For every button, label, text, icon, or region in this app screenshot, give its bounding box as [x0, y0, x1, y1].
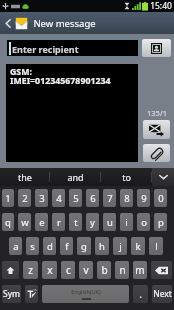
staticText: j — [119, 240, 122, 253]
button[interactable]: j — [113, 237, 127, 255]
staticText: Next — [153, 288, 172, 300]
button[interactable]: i — [120, 213, 133, 231]
staticText: h — [99, 240, 105, 253]
button[interactable]: q — [2, 213, 14, 231]
staticText: c — [66, 263, 71, 277]
button[interactable]: 8 — [120, 189, 133, 207]
button[interactable]: x — [42, 261, 57, 279]
button[interactable]: GSM: IMEI=012345678901234 — [6, 64, 138, 162]
staticText: a — [13, 240, 19, 253]
button[interactable]: v — [79, 261, 93, 279]
staticText: New message — [33, 17, 96, 30]
staticText: y — [90, 216, 95, 229]
button[interactable]: g — [77, 237, 91, 255]
button[interactable]: Change language — [25, 285, 38, 303]
staticText: English(UK) — [71, 288, 101, 295]
staticText: 7 — [107, 192, 113, 205]
staticText: 135/1 — [147, 108, 167, 118]
staticText: v — [83, 263, 89, 277]
button[interactable]: Attach — [143, 144, 170, 162]
staticText: 0 — [158, 192, 164, 205]
button[interactable]: b — [97, 261, 111, 279]
button[interactable]: Add subject — [143, 120, 170, 139]
button[interactable]: More suggestions — [152, 168, 174, 186]
button[interactable]: 3 — [35, 189, 48, 207]
staticText: s — [30, 240, 35, 253]
button[interactable]: 0 — [154, 189, 167, 207]
staticText: g — [81, 240, 87, 253]
staticText: r — [57, 216, 61, 229]
button[interactable]: l — [149, 237, 163, 255]
staticText: 8 — [124, 192, 130, 205]
button[interactable]: u — [103, 213, 116, 231]
button[interactable]: t — [69, 213, 82, 231]
staticText: o — [141, 216, 147, 229]
button[interactable]: s — [26, 237, 39, 255]
staticText: 1 — [5, 192, 11, 205]
staticText: t — [74, 216, 78, 229]
button[interactable]: k — [131, 237, 145, 255]
staticText: d — [47, 240, 53, 253]
button[interactable]: c — [61, 261, 75, 279]
button[interactable]: h — [95, 237, 109, 255]
button[interactable]: 7 — [103, 189, 116, 207]
staticText: f — [65, 240, 69, 253]
button[interactable]: Sym — [2, 285, 21, 303]
button[interactable]: to — [101, 168, 151, 186]
button[interactable]: 9 — [137, 189, 150, 207]
staticText: the — [18, 171, 32, 183]
button[interactable]: a — [9, 237, 22, 255]
button[interactable]: 5 — [69, 189, 82, 207]
button[interactable]: 4 — [52, 189, 65, 207]
staticText: l — [155, 240, 158, 253]
staticText: n — [119, 263, 126, 277]
button[interactable]: Next — [152, 285, 172, 303]
button[interactable]: 1 — [2, 189, 14, 207]
staticText: 9 — [141, 192, 147, 205]
button[interactable]: the — [0, 168, 49, 186]
button[interactable]: p — [154, 213, 167, 231]
button[interactable]: z — [23, 261, 38, 279]
staticText: to — [122, 171, 131, 183]
button[interactable]: Enter recipient — [7, 40, 138, 56]
staticText: Sym — [3, 288, 20, 300]
button[interactable]: and — [50, 168, 100, 186]
staticText: x — [47, 263, 53, 277]
button[interactable]: e — [35, 213, 48, 231]
staticText: i — [125, 216, 128, 229]
staticText: k — [135, 240, 141, 253]
staticText: q — [5, 216, 11, 229]
button[interactable]: d — [43, 237, 56, 255]
staticText: e — [39, 216, 45, 229]
button[interactable]: Backspace — [151, 261, 172, 279]
staticText: 2 — [22, 192, 28, 205]
staticText: . — [139, 287, 142, 301]
button[interactable]: n — [115, 261, 129, 279]
staticText: GSM: IMEI=012345678901234 — [10, 66, 111, 87]
button[interactable]: y — [86, 213, 99, 231]
staticText: b — [101, 263, 108, 277]
button[interactable]: w — [18, 213, 31, 231]
button[interactable]: . — [133, 285, 148, 303]
staticText: z — [28, 263, 33, 277]
staticText: Enter recipient — [12, 43, 79, 55]
button[interactable]: 6 — [86, 189, 99, 207]
button[interactable]: Shift — [2, 261, 19, 279]
button[interactable]: m — [133, 261, 147, 279]
staticText: 15:40 — [150, 0, 172, 12]
button[interactable]: 2 — [18, 189, 31, 207]
staticText: 3 — [39, 192, 45, 205]
button[interactable]: Select contacts — [142, 39, 171, 57]
button[interactable]: r — [52, 213, 65, 231]
staticText: p — [158, 216, 164, 229]
staticText: and — [67, 171, 84, 183]
staticText: 6 — [90, 192, 96, 205]
staticText: m — [135, 263, 145, 277]
staticText: 5 — [73, 192, 79, 205]
button[interactable]: f — [60, 237, 73, 255]
staticText: 4 — [56, 192, 62, 205]
staticText: u — [107, 216, 113, 229]
button[interactable]: Back — [1, 12, 15, 34]
button[interactable]: o — [137, 213, 150, 231]
button[interactable]: Space — [42, 285, 129, 303]
